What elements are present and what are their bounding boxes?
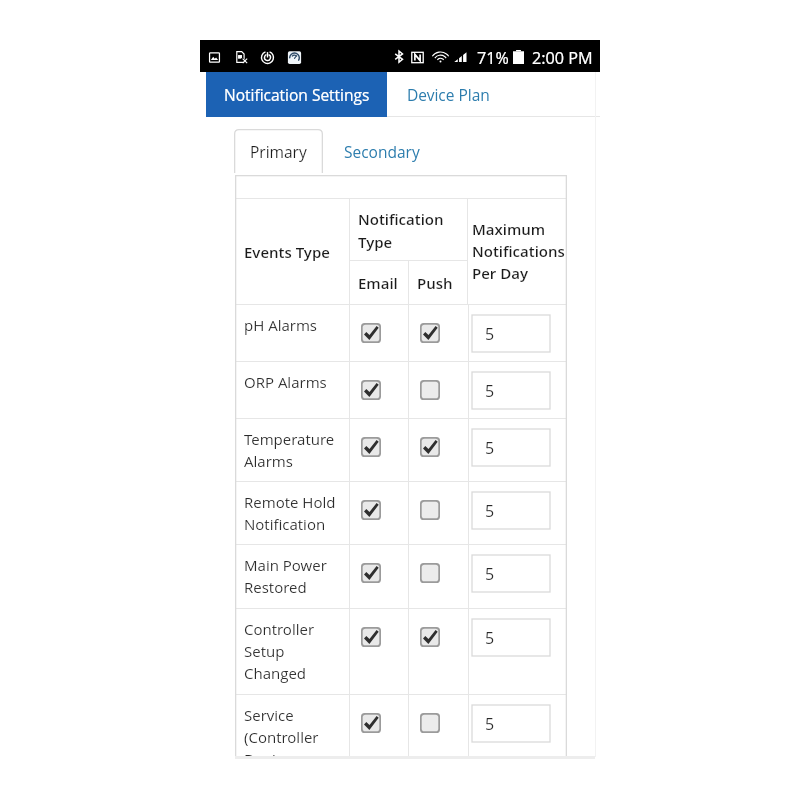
button[interactable]: Notification Settings: [206, 72, 387, 117]
staticText: 5: [485, 563, 495, 585]
other: Email notification toggle: [361, 380, 381, 400]
staticText: 5: [485, 713, 495, 735]
staticText: Main Power Restored: [244, 555, 349, 598]
staticText: Controller Setup Changed: [244, 619, 349, 684]
other: Push notification toggle: [420, 323, 440, 343]
staticText: Events Type: [244, 242, 330, 262]
button[interactable]: Remote Hold Notification: [235, 482, 567, 544]
staticText: 71%: [477, 47, 509, 69]
other: Push notification toggle: [420, 563, 440, 583]
button[interactable]: 5: [472, 619, 550, 656]
other: Email notification toggle: [361, 713, 381, 733]
button[interactable]: 5: [472, 492, 550, 529]
staticText: Primary: [250, 141, 307, 162]
other: Push notification toggle: [420, 437, 440, 457]
staticText: ORP Alarms: [244, 372, 349, 392]
other: Email notification toggle: [361, 563, 381, 583]
staticText: Device Plan: [407, 84, 490, 105]
button[interactable]: Primary: [234, 129, 323, 173]
staticText: 2:00 PM: [532, 47, 593, 69]
staticText: Service (Controller Due): [244, 705, 349, 757]
staticText: pH Alarms: [244, 315, 349, 335]
other: Email notification toggle: [361, 627, 381, 647]
button[interactable]: 5: [472, 372, 550, 409]
button[interactable]: 5: [472, 555, 550, 592]
staticText: Maximum Notifications Per Day: [472, 219, 587, 284]
staticText: Push: [417, 273, 453, 293]
button[interactable]: pH Alarms: [235, 305, 567, 361]
staticText: 5: [485, 437, 495, 459]
other: Push notification toggle: [420, 500, 440, 520]
staticText: Temperature Alarms: [244, 429, 349, 472]
other: Push notification toggle: [420, 713, 440, 733]
button[interactable]: Device Plan: [387, 72, 600, 117]
staticText: 5: [485, 380, 495, 402]
button[interactable]: Controller Setup Changed: [235, 609, 567, 694]
staticText: Notification Settings: [224, 84, 370, 105]
button[interactable]: Service (Controller Due): [235, 695, 567, 757]
staticText: Email: [358, 273, 398, 293]
button[interactable]: 5: [472, 429, 550, 466]
button[interactable]: Secondary: [334, 129, 430, 173]
staticText: 5: [485, 627, 495, 649]
staticText: Notification Type: [358, 209, 444, 252]
staticText: 5: [485, 500, 495, 522]
button[interactable]: ORP Alarms: [235, 362, 567, 418]
staticText: Secondary: [344, 141, 420, 162]
button[interactable]: 5: [472, 705, 550, 742]
other: Email notification toggle: [361, 500, 381, 520]
other: Email notification toggle: [361, 437, 381, 457]
other: Email notification toggle: [361, 323, 381, 343]
button[interactable]: Main Power Restored: [235, 545, 567, 608]
button[interactable]: Temperature Alarms: [235, 419, 567, 481]
staticText: Remote Hold Notification: [244, 492, 349, 535]
other: Push notification toggle: [420, 627, 440, 647]
other: Push notification toggle: [420, 380, 440, 400]
staticText: 5: [485, 323, 495, 345]
button[interactable]: 5: [472, 315, 550, 352]
